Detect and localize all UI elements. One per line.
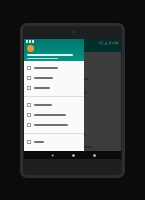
button[interactable]: Home: [69, 151, 77, 159]
button[interactable]: Menu item icon: [24, 120, 84, 130]
button[interactable]: [24, 39, 84, 61]
button[interactable]: Menu item icon: [24, 73, 84, 83]
button[interactable]: Menu item icon: [24, 63, 84, 73]
button[interactable]: [24, 100, 121, 114]
button[interactable]: Menu item icon: [24, 100, 84, 110]
button[interactable]: Menu item icon: [24, 110, 84, 120]
other: Menu item icon: [27, 140, 31, 144]
other: Menu item icon: [27, 86, 31, 90]
button[interactable]: Menu item icon: [24, 83, 84, 93]
button[interactable]: [24, 86, 121, 100]
other: Menu item icon: [27, 113, 31, 117]
other: Menu item icon: [27, 76, 31, 80]
button[interactable]: [24, 114, 121, 128]
other: Menu item icon: [27, 123, 31, 127]
button[interactable]: [24, 58, 121, 72]
button[interactable]: [24, 72, 121, 86]
other: Menu item icon: [27, 103, 31, 107]
button[interactable]: Menu item icon: [24, 137, 84, 147]
button[interactable]: Back: [48, 151, 56, 159]
other: Menu item icon: [27, 66, 31, 70]
button[interactable]: [24, 142, 121, 151]
button[interactable]: Recents: [90, 151, 98, 159]
button[interactable]: [24, 128, 121, 142]
